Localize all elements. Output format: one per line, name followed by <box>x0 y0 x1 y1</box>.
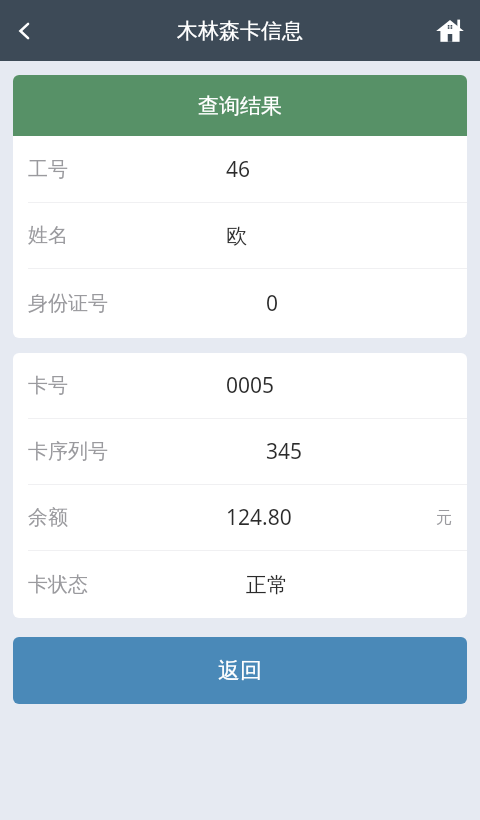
staticText: 345 <box>266 437 303 466</box>
button[interactable]: 卡号 <box>13 353 467 418</box>
button[interactable]: 姓名 <box>13 203 467 268</box>
staticText: 身份证号 <box>28 291 108 316</box>
button[interactable]: 工号 <box>13 136 467 202</box>
staticText: 工号 <box>28 157 68 182</box>
button[interactable]: Back <box>0 7 48 55</box>
staticText: 卡状态 <box>28 572 88 597</box>
staticText: 查询结果 <box>198 93 282 119</box>
button[interactable]: 卡序列号 <box>13 419 467 484</box>
button[interactable]: 身份证号 <box>13 269 467 338</box>
button[interactable]: Home <box>428 9 472 53</box>
staticText: 返回 <box>218 657 262 685</box>
button[interactable]: 卡状态 <box>13 551 467 618</box>
staticText: 卡序列号 <box>28 439 108 464</box>
staticText: 木林森卡信息 <box>177 18 303 44</box>
staticText: 正常 <box>246 572 288 598</box>
button[interactable]: 返回 <box>13 637 467 704</box>
staticText: 0 <box>266 289 279 318</box>
button[interactable]: 余额 <box>13 485 467 550</box>
staticText: 元 <box>436 508 452 528</box>
staticText: 欧 <box>226 223 247 249</box>
staticText: 46 <box>226 155 251 184</box>
staticText: 卡号 <box>28 373 68 398</box>
staticText: 124.80 <box>226 503 292 532</box>
staticText: 0005 <box>226 371 275 400</box>
staticText: 姓名 <box>28 223 68 248</box>
staticText: 余额 <box>28 505 68 530</box>
